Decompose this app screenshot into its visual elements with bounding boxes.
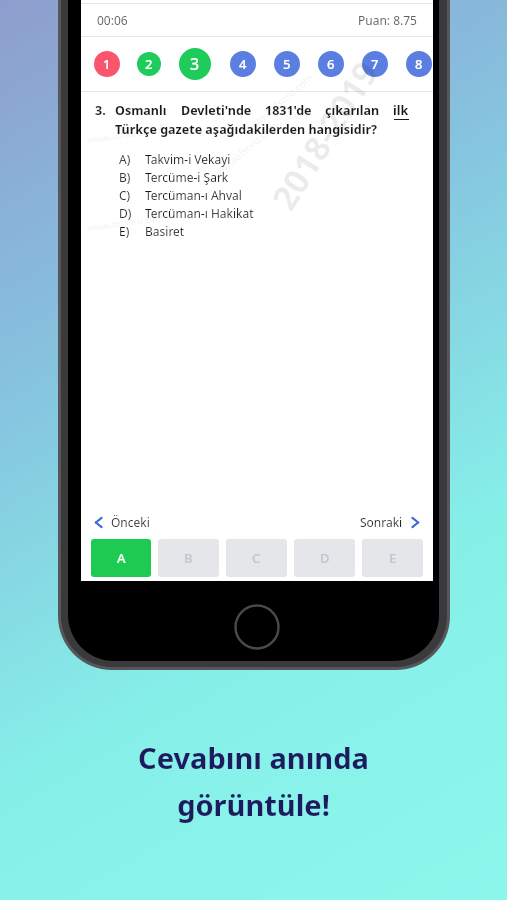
button[interactable]: E — [362, 539, 423, 577]
staticText: ilk — [393, 102, 409, 119]
staticText: 6 — [327, 55, 335, 73]
staticText: 00:06 — [97, 12, 128, 28]
button[interactable]: 5 — [274, 51, 300, 77]
staticText: Önceki — [111, 514, 150, 530]
staticText: 3. — [95, 102, 115, 119]
staticText: B — [184, 549, 193, 567]
button[interactable]: Sonraki — [360, 514, 421, 530]
button[interactable]: C — [226, 539, 287, 577]
staticText: 4 — [239, 55, 247, 73]
staticText: çıkarılan — [325, 102, 380, 119]
staticText: 1831'de — [265, 102, 312, 119]
staticText: D — [320, 549, 330, 567]
button[interactable]: Previous — [93, 514, 150, 530]
other: Previous — [93, 517, 104, 528]
button[interactable]: 1 — [94, 51, 120, 77]
staticText: www.aofsoru.com — [241, 70, 315, 136]
staticText: Puan: 8.75 — [358, 12, 417, 28]
staticText: 7 — [371, 55, 379, 73]
staticText: görüntüle! — [177, 785, 330, 824]
staticText: A — [117, 549, 126, 567]
staticText: 1 — [103, 55, 111, 73]
button[interactable]: 7 — [362, 51, 388, 77]
button[interactable]: 6 — [318, 51, 344, 77]
staticText: Tercüme-i Şark — [145, 169, 229, 185]
staticText: D) — [119, 205, 145, 221]
staticText: A) — [119, 151, 145, 167]
staticText: 2018-2019 — [261, 52, 388, 218]
staticText: Tercüman-ı Ahval — [145, 187, 242, 203]
button[interactable]: A — [91, 539, 151, 577]
staticText: www.aofsoru.com — [86, 211, 164, 233]
staticText: Osmanlı — [115, 102, 167, 119]
staticText: E — [389, 549, 397, 567]
button[interactable]: D — [294, 539, 355, 577]
button[interactable]: D) — [95, 204, 421, 222]
button[interactable]: B) — [95, 168, 421, 186]
staticText: Cevabını anında — [138, 738, 369, 777]
button[interactable]: A) — [95, 150, 421, 168]
staticText: Tercüman-ı Hakikat — [145, 205, 254, 221]
staticText: 5 — [283, 55, 291, 73]
staticText: Türkçe gazete aşağıdakilerden hangisidir… — [115, 121, 377, 138]
staticText: C) — [119, 187, 145, 203]
staticText: B) — [119, 169, 145, 185]
button[interactable]: B — [158, 539, 219, 577]
staticText: www.aofsoru.com — [206, 118, 280, 184]
button[interactable]: C) — [95, 186, 421, 204]
button[interactable]: 8 — [406, 51, 432, 77]
other: Next — [410, 517, 421, 528]
button[interactable]: E) — [95, 222, 421, 240]
staticText: www.aofsoru.com — [86, 123, 164, 145]
staticText: Sonraki — [360, 514, 403, 530]
staticText: Devleti'nde — [181, 102, 252, 119]
other: Home — [234, 604, 280, 650]
staticText: 8 — [415, 55, 423, 73]
staticText: E) — [119, 223, 145, 239]
button[interactable]: 2 — [137, 52, 161, 76]
staticText: 2 — [145, 55, 153, 73]
button[interactable]: 3 — [179, 48, 211, 80]
staticText: Takvim-i Vekayi — [145, 151, 231, 167]
staticText: 3 — [190, 53, 200, 75]
button[interactable]: 4 — [230, 51, 256, 77]
staticText: Basiret — [145, 223, 185, 239]
staticText: C — [252, 549, 261, 567]
